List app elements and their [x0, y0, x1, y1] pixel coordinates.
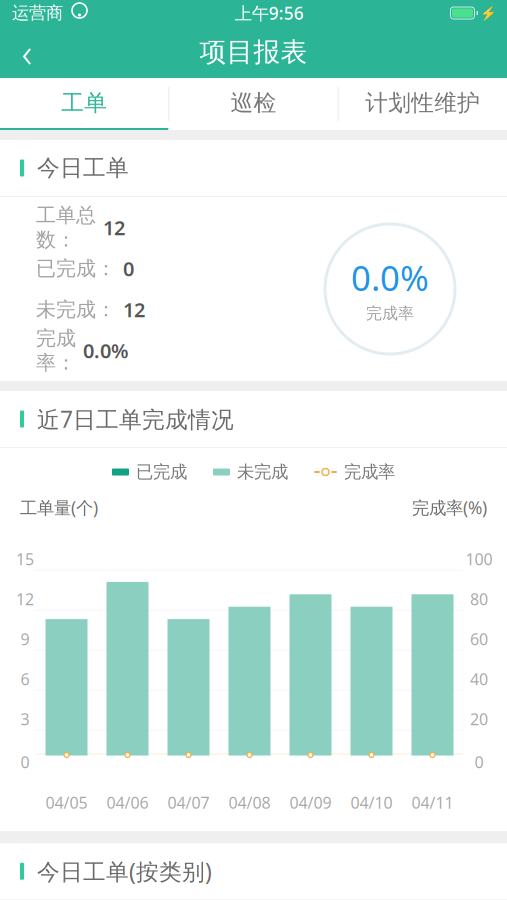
staticText: ⚡	[480, 5, 497, 21]
staticText: 运营商	[12, 2, 63, 24]
staticText: 6	[20, 668, 29, 690]
staticText: 工单总数：	[36, 203, 96, 252]
staticText: 0.0%	[351, 255, 429, 301]
staticText: 3	[20, 708, 29, 730]
staticText: 12	[123, 296, 145, 323]
staticText: 15	[16, 548, 34, 570]
staticText: 已完成：	[36, 256, 116, 281]
staticText: 04/06	[106, 792, 148, 813]
staticText: 04/07	[167, 792, 209, 813]
staticText: 今日工单(按类别)	[37, 856, 212, 886]
staticText: 04/08	[228, 792, 270, 813]
button[interactable]: 计划性维护	[339, 78, 507, 130]
button[interactable]: 巡检	[169, 78, 338, 130]
staticText: 完成率(%)	[412, 496, 487, 519]
staticText: 完成率	[344, 461, 395, 483]
staticText: 计划性维护	[365, 89, 480, 117]
staticText: 0	[474, 751, 483, 773]
staticText: 9	[20, 628, 29, 650]
staticText: 100	[465, 548, 492, 570]
staticText: 04/10	[350, 792, 392, 813]
staticText: 完成率：	[36, 326, 76, 375]
staticText: 0	[20, 751, 29, 773]
staticText: 0.0%	[83, 337, 129, 364]
staticText: 04/11	[411, 792, 453, 813]
staticText: 04/05	[45, 792, 87, 813]
staticText: 上午9:56	[235, 1, 304, 24]
staticText: 今日工单	[37, 154, 129, 182]
staticText: 04/09	[289, 792, 331, 813]
button[interactable]: 返回	[0, 26, 54, 78]
staticText: 12	[16, 588, 34, 610]
staticText: ‹	[21, 25, 32, 78]
staticText: 20	[470, 708, 488, 730]
staticText: 12	[103, 214, 125, 241]
button[interactable]: 工单	[0, 78, 168, 130]
staticText: 已完成	[136, 461, 187, 483]
staticText: 完成率	[366, 304, 414, 323]
staticText: 40	[470, 668, 488, 690]
staticText: 工单量(个)	[20, 496, 98, 519]
staticText: 60	[470, 628, 488, 650]
staticText: 80	[470, 588, 488, 610]
staticText: 巡检	[230, 89, 276, 117]
staticText: 0	[123, 255, 134, 282]
staticText: 未完成：	[36, 297, 116, 322]
staticText: 项目报表	[199, 36, 307, 68]
staticText: 工单	[61, 89, 107, 117]
staticText: 未完成	[237, 461, 288, 483]
staticText: 近7日工单完成情况	[37, 404, 234, 434]
